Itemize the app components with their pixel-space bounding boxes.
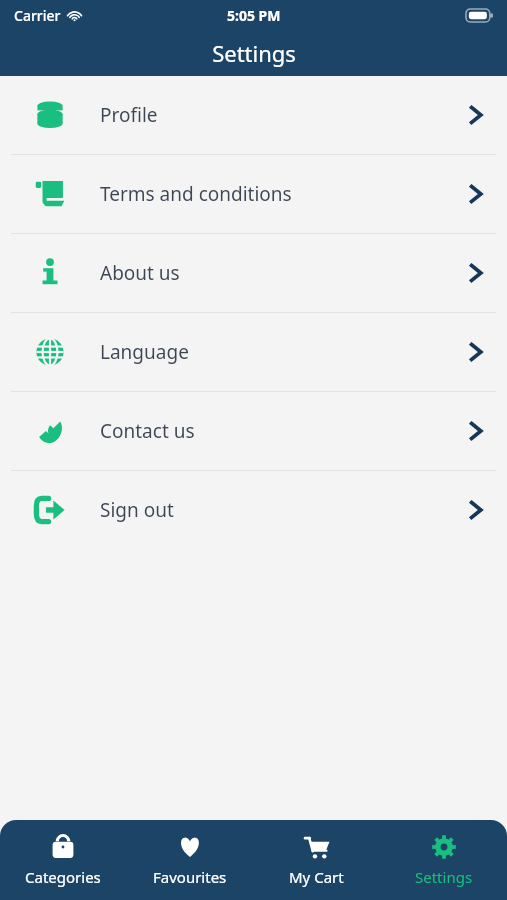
button[interactable]: Contact us [0,392,507,470]
button[interactable]: Sign out [0,471,507,549]
button[interactable]: My Cart [253,820,380,900]
staticText: Categories [25,867,101,887]
staticText: Settings [415,867,473,887]
button[interactable]: Settings [380,820,507,900]
button[interactable]: Profile [0,76,507,154]
button[interactable]: About us [0,234,507,312]
staticText: My Cart [289,867,344,887]
staticText: Settings [212,38,296,68]
staticText: Language [100,339,445,365]
staticText: 5:05 PM [227,6,281,25]
staticText: Sign out [100,497,445,523]
button[interactable]: Language [0,313,507,391]
staticText: About us [100,260,445,286]
button[interactable]: Favourites [126,820,253,900]
staticText: Carrier [14,6,61,25]
staticText: Profile [100,102,445,128]
button[interactable]: Categories [0,820,126,900]
staticText: Contact us [100,418,445,444]
staticText: Favourites [153,867,227,887]
staticText: Terms and conditions [100,181,445,207]
button[interactable]: Terms and conditions [0,155,507,233]
